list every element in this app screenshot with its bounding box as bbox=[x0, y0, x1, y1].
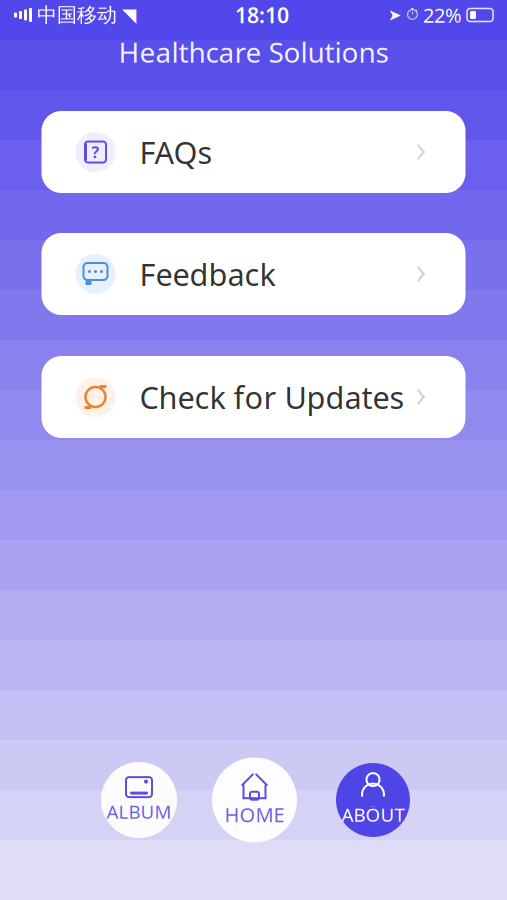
button[interactable]: ? bbox=[41, 111, 465, 193]
staticText: 22% bbox=[423, 2, 462, 28]
staticText: 中国移动 bbox=[37, 3, 117, 27]
staticText: ➤ bbox=[388, 6, 401, 24]
button[interactable]: HOME bbox=[212, 757, 297, 842]
button[interactable]: ALBUM bbox=[101, 762, 177, 838]
staticText: ? bbox=[91, 141, 99, 163]
staticText: Check for Updates bbox=[139, 377, 404, 417]
staticText: Feedback bbox=[139, 254, 275, 294]
staticText: ABOUT bbox=[341, 802, 404, 827]
staticText: 18:10 bbox=[235, 1, 289, 29]
button[interactable]: Check for Updates bbox=[41, 356, 465, 438]
staticText: ◥ bbox=[122, 4, 136, 26]
staticText: HOME bbox=[224, 801, 284, 828]
button[interactable]: ABOUT bbox=[336, 763, 410, 837]
staticText: ALBUM bbox=[106, 799, 171, 824]
staticText: ⏱ bbox=[406, 7, 418, 23]
staticText: Healthcare Solutions bbox=[118, 33, 388, 71]
staticText: FAQs bbox=[139, 132, 212, 172]
button[interactable]: Feedback bbox=[41, 233, 465, 315]
